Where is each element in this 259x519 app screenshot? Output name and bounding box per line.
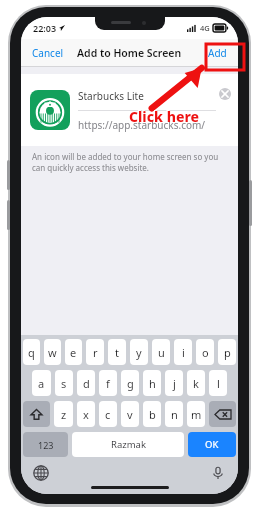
button[interactable]: Backspace	[209, 401, 236, 427]
staticText: p	[224, 345, 231, 360]
button[interactable]: s	[55, 370, 73, 396]
button[interactable]: u	[152, 339, 170, 365]
staticText: An icon will be added to your home scree…	[32, 151, 227, 173]
staticText: s	[61, 376, 67, 391]
button[interactable]: g	[121, 370, 139, 396]
staticText: l	[217, 376, 220, 391]
button[interactable]: n	[165, 401, 183, 427]
button[interactable]: y	[130, 339, 148, 365]
button[interactable]: t	[108, 339, 126, 365]
button[interactable]: k	[187, 370, 205, 396]
staticText: e	[70, 345, 77, 360]
button[interactable]: x	[77, 401, 95, 427]
staticText: Click here	[128, 106, 198, 125]
button[interactable]: m	[187, 401, 205, 427]
staticText: q	[28, 345, 35, 360]
staticText: 123	[38, 439, 54, 451]
staticText: v	[127, 407, 133, 422]
staticText: n	[171, 407, 178, 422]
staticText: x	[83, 407, 89, 422]
staticText: b	[149, 407, 156, 422]
staticText: 4G	[200, 23, 210, 33]
staticText: OK	[205, 438, 219, 451]
button[interactable]: Razmak	[72, 432, 184, 457]
staticText: z	[61, 407, 67, 422]
button[interactable]: p	[218, 339, 236, 365]
staticText: Cancel	[32, 46, 64, 60]
staticText: y	[136, 345, 142, 360]
staticText: k	[193, 376, 199, 391]
button[interactable]: c	[99, 401, 117, 427]
button[interactable]: Add	[197, 41, 238, 65]
staticText: m	[191, 407, 202, 422]
staticText: w	[48, 345, 57, 360]
button[interactable]: a	[32, 370, 51, 396]
button[interactable]: i	[174, 339, 192, 365]
button[interactable]: Clear text	[219, 88, 231, 100]
button[interactable]: v	[121, 401, 139, 427]
staticText: f	[106, 376, 110, 391]
staticText: Add	[208, 46, 227, 60]
button[interactable]: Dictation	[210, 465, 226, 481]
button[interactable]: b	[143, 401, 161, 427]
button[interactable]: z	[54, 401, 73, 427]
staticText: 22:03	[33, 22, 57, 34]
button[interactable]: l	[209, 370, 227, 396]
staticText: o	[202, 345, 209, 360]
button[interactable]: Shift	[23, 401, 50, 427]
button[interactable]: f	[99, 370, 117, 396]
staticText: d	[83, 376, 90, 391]
staticText: https://app.starbucks.com/	[78, 118, 206, 132]
staticText: Add to Home Screen	[77, 46, 182, 60]
button[interactable]: d	[77, 370, 95, 396]
staticText: a	[38, 376, 45, 391]
button[interactable]: Switch keyboard	[33, 465, 49, 481]
button[interactable]: q	[23, 339, 40, 365]
staticText: Razmak	[111, 438, 146, 451]
staticText: Starbucks Lite	[78, 89, 144, 103]
button[interactable]: h	[143, 370, 161, 396]
button[interactable]: 123	[23, 432, 68, 457]
staticText: t	[115, 345, 119, 360]
button[interactable]: OK	[188, 432, 236, 457]
button[interactable]: o	[196, 339, 214, 365]
staticText: g	[127, 376, 134, 391]
staticText: h	[149, 376, 156, 391]
button[interactable]: w	[44, 339, 61, 365]
staticText: Click here	[129, 107, 199, 126]
staticText: c	[105, 407, 111, 422]
button[interactable]: r	[86, 339, 104, 365]
staticText: i	[182, 345, 185, 360]
staticText: r	[93, 345, 98, 360]
button[interactable]: j	[165, 370, 183, 396]
staticText: j	[173, 376, 176, 391]
button[interactable]: e	[65, 339, 82, 365]
staticText: u	[158, 345, 165, 360]
button[interactable]: Cancel	[21, 41, 75, 65]
